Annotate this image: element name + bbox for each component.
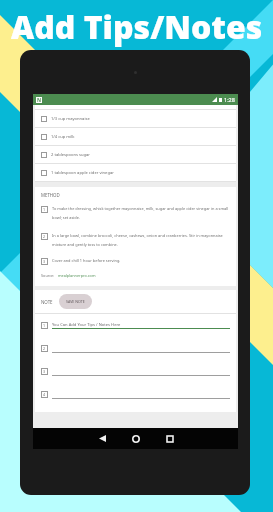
staticText: 1 [43, 207, 46, 212]
button[interactable]: 1 tablespoon apple cider vinegar [35, 164, 236, 182]
button[interactable]: SAVE NOTE [59, 294, 92, 309]
button[interactable]: 2 [35, 337, 236, 360]
button[interactable]: mealplannerpro.com [58, 273, 96, 278]
staticText: 2 [43, 234, 46, 239]
button[interactable]: Home [119, 428, 153, 449]
staticText: METHOD [41, 192, 60, 198]
staticText: You Can Add Your Tips / Notes Here [52, 322, 121, 328]
staticText: 1:28 [224, 96, 235, 103]
staticText: N [37, 97, 42, 103]
staticText: 3 [43, 259, 46, 264]
staticText: Cover and chill 1 hour before serving. [52, 258, 121, 263]
button[interactable]: 1 [35, 314, 236, 337]
staticText: Add Tips/Notes [11, 5, 263, 49]
button[interactable]: 1/4 cup milk [35, 128, 236, 146]
button[interactable]: 4 [35, 383, 236, 406]
staticText: 2 tablespoons sugar [51, 152, 91, 158]
staticText: 1/4 cup milk [51, 134, 75, 140]
button[interactable]: 3 [35, 360, 236, 383]
staticText: NOTE [41, 299, 53, 305]
staticText: Source: [41, 273, 55, 278]
staticText: In a large bowl, combine broccoli, chees… [52, 233, 230, 248]
staticText: 1/3 cup mayonnaise [51, 116, 90, 122]
button[interactable]: Recent apps [153, 428, 187, 449]
staticText: SAVE NOTE [66, 299, 85, 304]
staticText: 1 tablespoon apple cider vinegar [51, 170, 114, 176]
button[interactable]: Back [85, 428, 119, 449]
staticText: 2 [43, 346, 46, 351]
button[interactable]: 2 tablespoons sugar [35, 146, 236, 164]
staticText: To make the dressing, whisk together may… [52, 206, 230, 221]
staticText: 4 [43, 392, 46, 397]
staticText: 3 [43, 369, 46, 374]
staticText: 1 [43, 323, 46, 328]
button[interactable]: 1/3 cup mayonnaise [35, 110, 236, 128]
